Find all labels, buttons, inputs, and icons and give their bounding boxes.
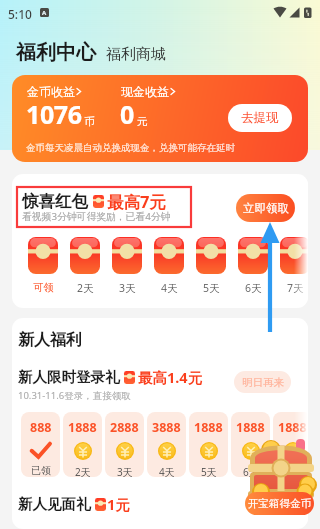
staticText: 5天: [203, 281, 220, 295]
button[interactable]: 1888: [273, 412, 308, 477]
staticText: 6天: [243, 465, 259, 477]
staticText: 2天: [75, 465, 91, 477]
staticText: 最高7元: [107, 190, 166, 213]
button[interactable]: 开宝箱得金币: [243, 438, 320, 518]
button[interactable]: 6天: [232, 237, 274, 295]
button[interactable]: 明日再来: [234, 371, 291, 393]
staticText: 新人见面礼: [18, 495, 91, 513]
button[interactable]: 3天: [106, 237, 148, 295]
staticText: 6天: [245, 281, 262, 295]
staticText: 开宝箱得金币: [248, 497, 311, 510]
button[interactable]: 可领: [22, 237, 64, 294]
button[interactable]: 福利中心: [16, 40, 96, 65]
staticText: 3888: [152, 419, 181, 436]
staticText: 4天: [161, 281, 178, 295]
staticText: 金币每天凌晨自动兑换成现金，兑换可能存在延时: [26, 142, 235, 154]
staticText: 1888: [278, 419, 307, 436]
staticText: 1元: [107, 494, 130, 514]
staticText: 立即领取: [243, 201, 289, 215]
button[interactable]: 1888: [189, 412, 228, 477]
button[interactable]: 1888: [63, 412, 102, 477]
button[interactable]: 2天: [64, 237, 106, 295]
staticText: 福利中心: [16, 40, 96, 65]
staticText: 看视频3分钟可得奖励，已看4分钟: [22, 210, 171, 223]
staticText: 币: [84, 115, 95, 128]
staticText: 1076: [26, 97, 82, 131]
staticText: 明日再来: [242, 376, 284, 389]
staticText: 元: [137, 115, 148, 128]
staticText: 10.31-11.6登录，直接领取: [18, 389, 131, 402]
staticText: 去提现: [241, 110, 279, 126]
staticText: 可领: [33, 281, 54, 294]
staticText: 2天: [77, 281, 94, 295]
button[interactable]: 5天: [190, 237, 232, 295]
staticText: 已领: [31, 464, 51, 477]
staticText: 1888: [194, 419, 223, 436]
button[interactable]: 2888: [105, 412, 144, 477]
button[interactable]: 福利商城: [106, 45, 166, 65]
staticText: 现金收益: [121, 84, 169, 99]
staticText: 1888: [236, 419, 265, 436]
staticText: 惊喜红包: [22, 191, 88, 212]
staticText: 5:10: [8, 6, 32, 22]
staticText: 5天: [201, 465, 217, 477]
staticText: 2888: [110, 419, 139, 436]
button[interactable]: 金币收益: [12, 75, 308, 162]
staticText: 0: [120, 97, 135, 131]
staticText: A: [42, 9, 47, 17]
button[interactable]: 7天: [274, 237, 308, 295]
staticText: 7天: [287, 281, 304, 295]
staticText: 888: [30, 419, 52, 436]
staticText: 7天: [285, 465, 301, 477]
button[interactable]: 4天: [148, 237, 190, 295]
staticText: 1888: [68, 419, 97, 436]
staticText: 最高1.4元: [138, 367, 203, 387]
staticText: 4天: [159, 465, 175, 477]
button[interactable]: 1888: [231, 412, 270, 477]
button[interactable]: 888: [21, 412, 60, 477]
button[interactable]: 立即领取: [236, 194, 295, 222]
staticText: 3天: [117, 465, 133, 477]
button[interactable]: 去提现: [228, 104, 292, 132]
staticText: 金币收益: [27, 84, 75, 99]
button[interactable]: 3888: [147, 412, 186, 477]
staticText: 新人限时登录礼: [18, 368, 120, 386]
staticText: 3天: [119, 281, 136, 295]
staticText: 福利商城: [106, 45, 166, 64]
staticText: 新人福利: [18, 330, 82, 350]
